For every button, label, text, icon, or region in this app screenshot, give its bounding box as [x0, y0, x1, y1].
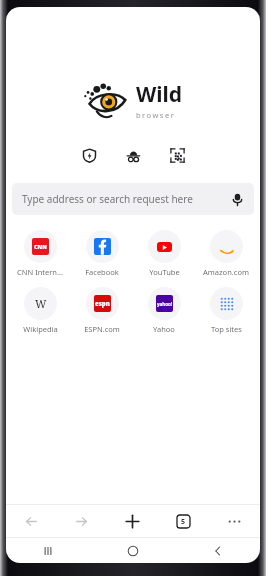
button[interactable]: New tab [107, 505, 158, 537]
button[interactable]: Top sites [195, 286, 257, 335]
staticText: W [35, 296, 47, 311]
button[interactable]: Voice search [228, 190, 246, 208]
staticText: espn [95, 300, 110, 308]
button[interactable]: yahoo! [133, 286, 195, 335]
button[interactable]: CNN [9, 229, 71, 278]
staticText: Wild [136, 80, 183, 109]
staticText: Yahoo [153, 324, 175, 334]
button[interactable]: Recent apps [6, 538, 90, 563]
button[interactable]: Scan QR code [163, 141, 191, 169]
staticText: 5 [181, 517, 186, 527]
staticText: CNN [34, 243, 47, 250]
staticText: browser [136, 110, 176, 120]
staticText: Wikipedia [23, 324, 58, 334]
button[interactable]: Home [90, 538, 175, 563]
button[interactable]: Type address or search request here [12, 183, 254, 215]
button[interactable]: Back [175, 538, 260, 563]
button[interactable]: Private incognito mode [119, 141, 147, 169]
staticText: YouTube [149, 267, 180, 277]
button[interactable]: espn [71, 286, 133, 335]
button[interactable]: Ad and tracker block [75, 141, 103, 169]
staticText: Type address or search request here [22, 192, 228, 206]
button[interactable]: Tabs, 5 open [158, 505, 209, 537]
button[interactable]: Facebook [71, 229, 133, 278]
button[interactable]: W [9, 286, 71, 335]
button[interactable]: More options [209, 505, 260, 537]
button[interactable]: YouTube [133, 229, 195, 278]
staticText: yahoo! [157, 301, 173, 307]
staticText: CNN Intern… [17, 267, 63, 277]
button[interactable]: Amazon.com [195, 229, 257, 278]
staticText: Amazon.com [203, 267, 249, 277]
staticText: Facebook [85, 267, 119, 277]
button[interactable]: Forward [56, 505, 107, 537]
staticText: Top sites [211, 324, 242, 334]
staticText: ESPN.com [84, 324, 120, 334]
button[interactable]: Back [6, 505, 56, 537]
